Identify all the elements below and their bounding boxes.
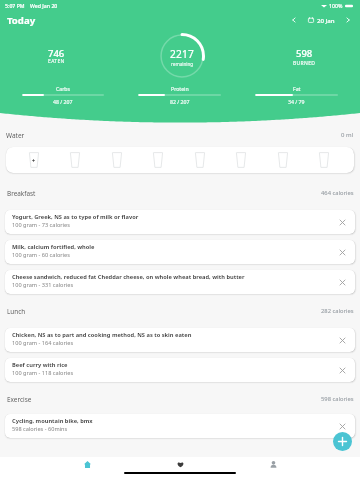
staticText: Today — [7, 14, 36, 27]
button[interactable]: Previous day — [288, 14, 300, 26]
button[interactable]: Chicken, NS as to part and cooking metho… — [5, 328, 355, 352]
staticText: 100 gram - 73 calories — [12, 221, 70, 229]
button[interactable]: Next day — [342, 14, 354, 26]
staticText: 100 gram - 60 calories — [12, 251, 70, 259]
staticText: Exercise — [7, 395, 32, 404]
button[interactable]: Milk, calcium fortified, whole — [5, 240, 355, 264]
staticText: Carbs — [56, 85, 71, 92]
staticText: 100 gram - 164 calories — [12, 339, 74, 347]
staticText: 5:07 PM — [5, 2, 25, 9]
button[interactable]: Cheese sandwich, reduced fat Cheddar che… — [5, 270, 355, 294]
button[interactable]: Favorites — [157, 457, 203, 471]
button[interactable]: Water glass 1 — [27, 151, 40, 169]
button[interactable]: Home — [64, 457, 110, 471]
staticText: Yogurt, Greek, NS as to type of milk or … — [12, 213, 139, 221]
staticText: 82 / 207 — [170, 98, 190, 105]
button[interactable]: Water glass 7 — [276, 151, 289, 169]
staticText: 464 calories — [321, 189, 354, 197]
staticText: 20 Jan — [317, 16, 335, 24]
staticText: Protein — [171, 85, 189, 92]
staticText: Water — [6, 131, 25, 140]
staticText: 598 calories - 60mins — [12, 425, 68, 433]
staticText: 598 calories — [321, 395, 354, 403]
staticText: 100% — [329, 2, 343, 9]
button[interactable]: Water glass 2 — [68, 151, 81, 169]
staticText: Milk, calcium fortified, whole — [12, 243, 95, 251]
staticText: Cycling, mountain bike, bmx — [12, 417, 93, 425]
staticText: BURNED — [293, 60, 316, 67]
staticText: 100 gram - 331 calories — [12, 281, 74, 289]
staticText: 2217 — [170, 47, 195, 61]
button[interactable]: Remove Cheese sandwich, reduced fat Ched… — [334, 274, 350, 290]
staticText: Cheese sandwich, reduced fat Cheddar che… — [12, 273, 245, 281]
staticText: Lunch — [7, 307, 26, 316]
button[interactable]: Water glass 8 — [317, 151, 330, 169]
staticText: 598 — [296, 47, 313, 60]
button[interactable]: Profile — [250, 457, 296, 471]
staticText: 746 — [48, 47, 65, 60]
button[interactable]: Add — [333, 432, 352, 451]
staticText: 34 / 79 — [288, 98, 305, 105]
button[interactable]: Yogurt, Greek, NS as to type of milk or … — [5, 210, 355, 234]
button[interactable]: Water glass 5 — [193, 151, 206, 169]
button[interactable]: Water glass 6 — [234, 151, 247, 169]
button[interactable]: Water glass 3 — [110, 151, 123, 169]
button[interactable]: Beef curry with rice — [5, 358, 355, 382]
staticText: Breakfast — [7, 189, 36, 198]
staticText: remaining — [171, 61, 194, 67]
button[interactable]: Remove Yogurt, Greek, NS as to type of m… — [334, 214, 350, 230]
staticText: 282 calories — [321, 307, 354, 315]
button[interactable]: Remove Cycling, mountain bike, bmx — [334, 418, 350, 434]
button[interactable]: Remove Milk, calcium fortified, whole — [334, 244, 350, 260]
staticText: Beef curry with rice — [12, 361, 68, 369]
button[interactable]: Water glass 4 — [151, 151, 164, 169]
staticText: Wed Jan 20 — [30, 2, 58, 9]
staticText: Chicken, NS as to part and cooking metho… — [12, 331, 192, 339]
staticText: EATEN — [48, 58, 65, 65]
staticText: 0 ml — [341, 131, 354, 139]
button[interactable]: Remove Chicken, NS as to part and cookin… — [334, 332, 350, 348]
staticText: 100 gram - 118 calories — [12, 369, 74, 377]
staticText: 48 / 207 — [53, 98, 73, 105]
button[interactable]: Remove Beef curry with rice — [334, 362, 350, 378]
button[interactable]: Cycling, mountain bike, bmx — [5, 414, 355, 438]
staticText: Fat — [293, 85, 301, 92]
button[interactable]: 20 Jan — [307, 15, 336, 25]
